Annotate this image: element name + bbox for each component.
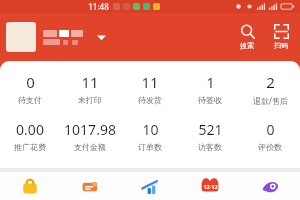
button[interactable]: 0 [0, 70, 60, 107]
staticText: 访客数 [198, 142, 222, 152]
button[interactable]: 11 [60, 70, 120, 107]
button[interactable]: Shop name [43, 30, 83, 45]
button[interactable]: Data [120, 172, 180, 200]
staticText: 待发货 [138, 95, 162, 105]
staticText: 521 [198, 120, 223, 139]
staticText: 待支付 [18, 95, 42, 105]
button[interactable]: Scan QR code [266, 22, 296, 52]
button[interactable]: Switch shop [93, 29, 109, 45]
button[interactable]: Orders [60, 172, 120, 200]
button[interactable]: 2 [240, 70, 300, 108]
staticText: 0 [26, 72, 35, 92]
staticText: 订单数 [138, 142, 162, 152]
staticText: 扫码 [274, 41, 288, 50]
button[interactable]: 1 [180, 70, 240, 107]
staticText: 未打印 [78, 95, 102, 105]
staticText: 0.00 [16, 120, 44, 139]
button[interactable]: Search [232, 22, 262, 52]
button[interactable]: Shop avatar [6, 22, 36, 52]
button[interactable]: 11 [120, 70, 180, 107]
staticText: 11 [141, 72, 159, 92]
button[interactable]: Assistant [240, 172, 300, 200]
staticText: 搜索 [240, 41, 254, 50]
staticText: 11:48 [88, 1, 109, 12]
staticText: 0 [266, 120, 275, 139]
button[interactable]: 0 [240, 118, 300, 154]
button[interactable]: 0.00 [0, 118, 60, 154]
staticText: 支付金额 [74, 142, 106, 152]
button[interactable]: Double 12 event [180, 172, 240, 200]
staticText: 1 [206, 72, 215, 92]
button[interactable]: Goods [0, 172, 60, 200]
staticText: 评价数 [258, 142, 282, 152]
staticText: 待签收 [198, 95, 222, 105]
staticText: 推广花费 [14, 142, 46, 152]
staticText: 11 [81, 72, 99, 92]
button[interactable]: 521 [180, 118, 240, 154]
staticText: 12·12 [203, 183, 218, 190]
button[interactable]: 1017.98 [60, 118, 120, 154]
staticText: 退款/售后 [253, 95, 288, 106]
staticText: 10 [142, 120, 159, 139]
button[interactable]: 10 [120, 118, 180, 154]
staticText: 2 [266, 72, 275, 92]
staticText: 1017.98 [64, 120, 116, 139]
